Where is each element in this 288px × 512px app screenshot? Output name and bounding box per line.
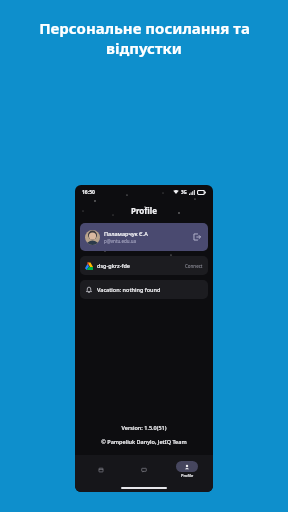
button[interactable]: Home: [84, 464, 118, 475]
staticText: © Pampeliuk Danylo, JetIQ Team: [75, 438, 213, 445]
staticText: Version: 1.5.0(51): [75, 424, 213, 431]
staticText: Персональне посилання та: [39, 18, 250, 38]
staticText: p@vntu.edu.ua: [104, 238, 137, 244]
staticText: 3G: [181, 189, 187, 195]
staticText: dsg-gkrz-fde: [97, 262, 185, 269]
staticText: 16:50: [82, 189, 95, 196]
button[interactable]: Log out: [191, 231, 203, 243]
button[interactable]: Messages: [127, 464, 161, 475]
staticText: Vacation: nothing found: [97, 286, 203, 293]
staticText: Паламарчук Є.А: [104, 230, 148, 237]
staticText: Profile: [181, 473, 194, 478]
staticText: Profile: [75, 205, 213, 216]
staticText: відпустки: [106, 38, 182, 58]
button[interactable]: Паламарчук Є.А: [80, 223, 208, 251]
button[interactable]: Profile: [170, 461, 204, 478]
staticText: Connect: [185, 263, 203, 269]
button[interactable]: dsg-gkrz-fde: [80, 256, 208, 275]
button[interactable]: Vacation: nothing found: [80, 280, 208, 299]
